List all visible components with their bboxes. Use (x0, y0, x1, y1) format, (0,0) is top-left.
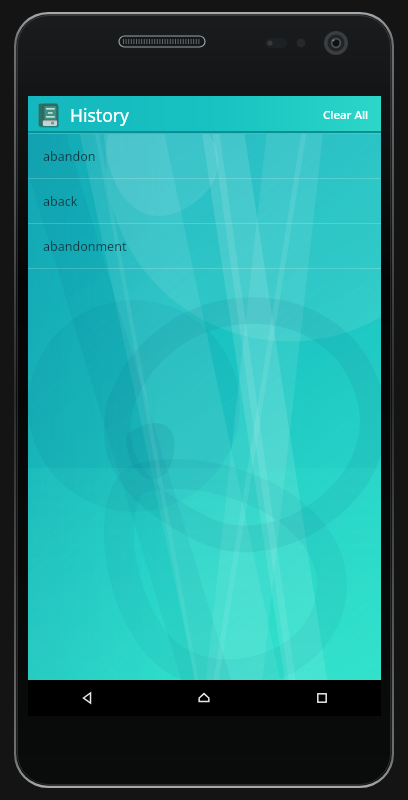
button[interactable]: abandon (28, 134, 381, 179)
button[interactable]: aback (28, 179, 381, 224)
button[interactable]: Back (28, 680, 145, 716)
button[interactable]: Recents (263, 680, 381, 716)
button[interactable]: Home (145, 680, 263, 716)
button[interactable]: App icon (35, 102, 61, 128)
staticText: abandon (43, 148, 96, 165)
staticText: abandonment (43, 238, 127, 255)
button[interactable]: Clear All (319, 101, 373, 129)
button[interactable]: abandonment (28, 224, 381, 269)
staticText: Clear All (323, 107, 369, 123)
staticText: History (70, 103, 129, 127)
staticText: aback (43, 193, 78, 210)
